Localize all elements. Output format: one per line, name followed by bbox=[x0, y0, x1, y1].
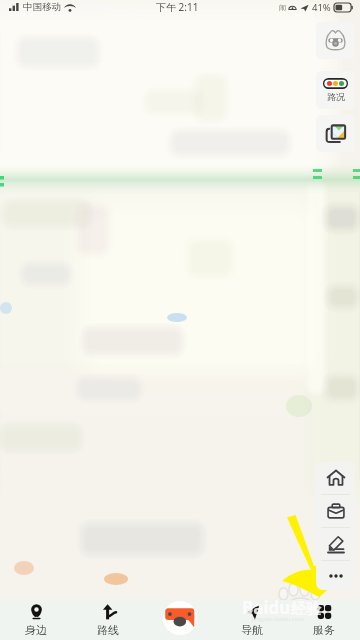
button[interactable]: Assistant bbox=[316, 22, 355, 59]
staticText: 下午 2:11 bbox=[156, 0, 199, 14]
staticText: 经验 bbox=[291, 600, 321, 619]
button[interactable]: 导航 bbox=[216, 600, 288, 640]
staticText: 身边 bbox=[25, 623, 47, 637]
button[interactable]: Traffic conditions bbox=[316, 71, 355, 109]
button[interactable]: 身边 bbox=[0, 600, 72, 640]
staticText: 中国移动 bbox=[23, 1, 61, 13]
button[interactable]: More bbox=[316, 561, 355, 590]
staticText: 路况 bbox=[327, 91, 345, 102]
button[interactable]: Edit bbox=[316, 528, 355, 560]
staticText: 闹 bbox=[279, 3, 286, 12]
button[interactable]: 路线 bbox=[72, 600, 144, 640]
staticText: jingyan.baidu.com bbox=[252, 615, 304, 623]
button[interactable]: Map layers bbox=[316, 115, 355, 152]
staticText: 导航 bbox=[241, 623, 263, 637]
button[interactable]: Home bbox=[316, 462, 355, 494]
staticText: 服务 bbox=[313, 623, 335, 637]
button[interactable]: Voice assistant bbox=[163, 601, 197, 635]
staticText: 路线 bbox=[97, 623, 119, 637]
button[interactable]: Work bbox=[316, 495, 355, 527]
staticText: 41% bbox=[312, 1, 331, 14]
staticText: Baidu bbox=[242, 596, 291, 619]
button[interactable]: 服务 bbox=[288, 600, 360, 640]
